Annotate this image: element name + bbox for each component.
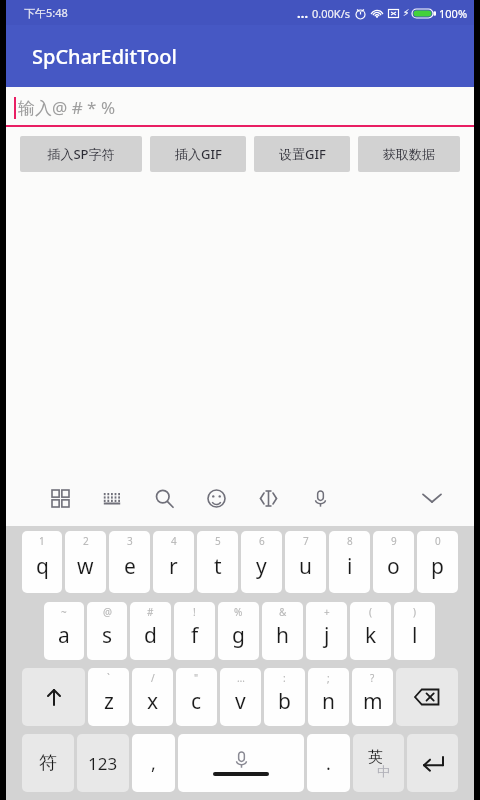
staticText: q (36, 552, 49, 581)
button[interactable]: 4 (153, 531, 194, 593)
button[interactable]: Enter (407, 734, 458, 792)
button[interactable]: Backspace (396, 668, 458, 726)
button[interactable]: Voice input (304, 482, 336, 514)
staticText: 中 (377, 763, 390, 779)
button[interactable]: + (306, 602, 347, 660)
button[interactable]: 插入SP字符 (20, 136, 142, 172)
staticText: : (283, 671, 286, 685)
staticText: ? (370, 671, 375, 685)
button[interactable]: Language (353, 734, 404, 792)
staticText: a (58, 621, 70, 650)
staticText: 3 (127, 534, 133, 548)
button[interactable]: ) (394, 602, 435, 660)
button[interactable]: Hide keyboard (416, 482, 448, 514)
button[interactable]: 7 (285, 531, 326, 593)
button[interactable]: Emoji (200, 482, 232, 514)
staticText: b (278, 687, 291, 716)
button[interactable]: Shift (22, 668, 85, 726)
button[interactable]: % (218, 602, 259, 660)
button[interactable]: Search (148, 482, 180, 514)
button[interactable]: 1 (22, 531, 62, 593)
staticText: , (151, 751, 156, 776)
staticText: ) (413, 605, 416, 619)
button[interactable]: " (176, 668, 217, 726)
button[interactable]: Text cursor (252, 482, 284, 514)
staticText: ; (327, 671, 330, 685)
staticText: r (169, 552, 178, 581)
button[interactable]: # (130, 602, 171, 660)
button[interactable]: Period (307, 734, 350, 792)
staticText: 8 (347, 534, 353, 548)
staticText: 下午5:48 (24, 5, 68, 20)
staticText: 100% (439, 6, 468, 21)
staticText: ( (369, 605, 372, 619)
staticText: SpCharEditTool (32, 43, 177, 70)
staticText: s (102, 621, 113, 650)
button[interactable]: @ (87, 602, 127, 660)
staticText: j (324, 621, 330, 650)
staticText: f (191, 621, 199, 650)
staticText: d (144, 621, 157, 650)
staticText: 0.00K/s (312, 6, 350, 21)
button[interactable]: 插入GIF (150, 136, 246, 172)
staticText: 123 (88, 752, 118, 775)
button[interactable]: 5 (197, 531, 238, 593)
button[interactable]: ~ (44, 602, 84, 660)
button[interactable]: 0 (417, 531, 458, 593)
button[interactable]: 3 (109, 531, 150, 593)
button[interactable]: ` (88, 668, 129, 726)
button[interactable]: 2 (65, 531, 106, 593)
staticText: 2 (83, 534, 89, 548)
staticText: # (147, 605, 154, 619)
staticText: 获取数据 (383, 146, 435, 162)
button[interactable]: Keyboard (96, 482, 128, 514)
staticText: 英 (368, 748, 383, 767)
staticText: … (297, 4, 309, 22)
button[interactable]: 设置GIF (254, 136, 350, 172)
staticText: 7 (303, 534, 309, 548)
button[interactable]: 获取数据 (358, 136, 460, 172)
staticText: / (151, 671, 155, 685)
staticText: i (347, 552, 353, 581)
staticText: x (147, 687, 159, 716)
button[interactable]: ; (308, 668, 349, 726)
staticText: g (232, 621, 245, 650)
button[interactable]: Apps (44, 482, 76, 514)
button[interactable]: ! (174, 602, 215, 660)
staticText: 4 (171, 534, 177, 548)
button[interactable]: 6 (241, 531, 282, 593)
button[interactable]: ( (350, 602, 391, 660)
staticText: " (194, 671, 199, 685)
button[interactable]: 9 (373, 531, 414, 593)
staticText: 插入GIF (175, 145, 222, 163)
button[interactable]: Numbers (77, 734, 129, 792)
staticText: ~ (61, 605, 67, 619)
button[interactable]: & (262, 602, 303, 660)
staticText: … (237, 671, 245, 685)
staticText: 插入SP字符 (47, 145, 115, 163)
button[interactable]: Comma (132, 734, 175, 792)
staticText: u (299, 552, 312, 581)
staticText: ! (193, 605, 196, 619)
button[interactable]: 8 (329, 531, 370, 593)
staticText: h (276, 621, 289, 650)
staticText: k (365, 621, 377, 650)
staticText: v (235, 687, 246, 716)
button[interactable]: ? (352, 668, 393, 726)
staticText: w (77, 552, 94, 581)
button[interactable]: Space (178, 734, 304, 792)
staticText: 0 (435, 534, 441, 548)
staticText: y (256, 552, 267, 581)
staticText: ⚡ (403, 8, 410, 18)
staticText: + (324, 605, 330, 619)
staticText: 6 (259, 534, 265, 548)
staticText: n (322, 687, 335, 716)
staticText: o (387, 552, 400, 581)
button[interactable]: Symbols (22, 734, 74, 792)
button[interactable]: / (132, 668, 173, 726)
staticText: 符 (39, 752, 57, 775)
staticText: p (431, 552, 444, 581)
button[interactable]: : (264, 668, 305, 726)
button[interactable]: … (220, 668, 261, 726)
staticText: @ (103, 605, 112, 619)
